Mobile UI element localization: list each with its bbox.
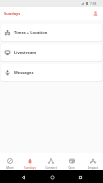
staticText: Times + Location — [14, 30, 48, 35]
button[interactable]: More — [0, 153, 20, 170]
staticText: Sundays — [24, 166, 36, 170]
button[interactable]: Give — [61, 153, 82, 170]
button[interactable]: Account — [90, 8, 101, 19]
staticText: Impact — [88, 166, 98, 170]
button[interactable]: Recents — [75, 172, 85, 182]
staticText: 7:58 — [90, 2, 97, 6]
staticText: Livestream — [14, 50, 37, 55]
staticText: Messages — [14, 70, 34, 75]
button[interactable]: Home — [47, 172, 57, 182]
button[interactable]: Livestream — [1, 44, 102, 61]
staticText: Sundays — [4, 11, 21, 16]
button[interactable]: Back — [18, 172, 28, 182]
button[interactable]: Impact — [82, 153, 103, 170]
button[interactable]: Messages — [1, 64, 102, 81]
staticText: More — [6, 166, 14, 170]
button[interactable]: Connect — [40, 153, 61, 170]
button[interactable]: Sundays — [20, 153, 40, 170]
staticText: Give — [68, 166, 75, 170]
button[interactable]: Times + Location — [1, 24, 102, 41]
staticText: Connect — [45, 166, 57, 170]
